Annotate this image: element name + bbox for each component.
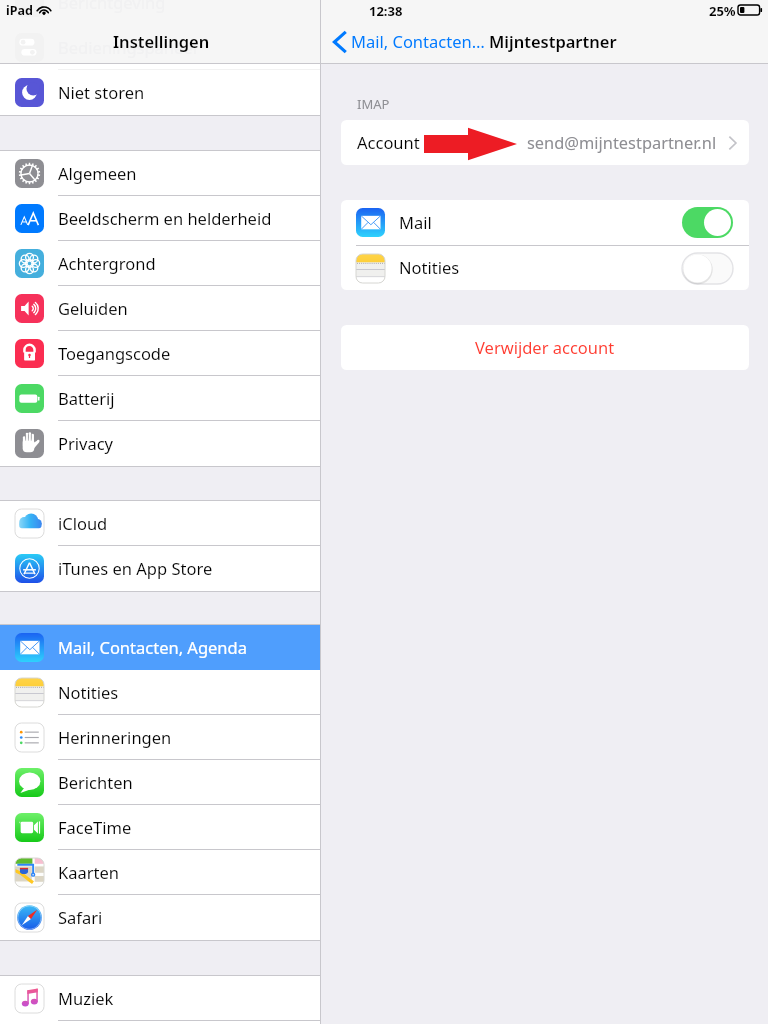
button[interactable]: iCloud	[0, 501, 320, 546]
staticText: FaceTime	[58, 816, 132, 838]
button[interactable]: Notities	[0, 670, 320, 715]
staticText: iCloud	[58, 512, 108, 534]
staticText: Herinneringen	[58, 726, 172, 748]
staticText: Verwijder account	[475, 336, 615, 358]
button[interactable]: Safari	[0, 895, 320, 940]
button[interactable]: Achtergrond	[0, 241, 320, 286]
button[interactable]: Muziek	[0, 976, 320, 1021]
staticText: Notities	[399, 256, 460, 278]
staticText: Mail, Contacten, Agenda	[58, 636, 247, 658]
staticText: Beeldscherm en helderheid	[58, 207, 272, 229]
button[interactable]: Niet storen	[0, 70, 320, 115]
staticText: IMAP	[357, 95, 390, 113]
staticText: Berichten	[58, 771, 133, 793]
button[interactable]: Geluiden	[0, 286, 320, 331]
staticText: iPad	[6, 2, 33, 19]
staticText: Toegangscode	[58, 342, 171, 364]
staticText: Mijntestpartner	[489, 30, 617, 52]
button[interactable]: Back	[321, 30, 485, 52]
button[interactable]: Herinneringen	[0, 715, 320, 760]
button[interactable]: iTunes en App Store	[0, 546, 320, 591]
button[interactable]: Mail, Contacten, Agenda	[0, 625, 320, 670]
button[interactable]: Verwijder account	[341, 325, 749, 370]
button[interactable]: Beeldscherm en helderheid	[0, 196, 320, 241]
staticText: Notities	[58, 681, 119, 703]
staticText: Achtergrond	[58, 252, 156, 274]
staticText: Muziek	[58, 987, 114, 1009]
button[interactable]: Batterij	[0, 376, 320, 421]
staticText: Account	[357, 131, 420, 153]
staticText: Mail, Contacten…	[351, 30, 485, 52]
staticText: 12:38	[369, 2, 403, 20]
button[interactable]: FaceTime	[0, 805, 320, 850]
staticText: Safari	[58, 906, 103, 928]
button[interactable]: Mail	[356, 200, 733, 245]
staticText: Mail	[399, 211, 432, 233]
staticText: 25%	[709, 2, 736, 20]
staticText: Instellingen	[113, 30, 210, 52]
staticText: Niet storen	[58, 81, 145, 103]
staticText: Kaarten	[58, 861, 120, 883]
staticText: Algemeen	[58, 162, 137, 184]
staticText: send@mijntestpartner.nl	[527, 131, 717, 153]
button[interactable]: Notities	[356, 246, 733, 290]
button[interactable]: Algemeen	[0, 151, 320, 196]
staticText: Geluiden	[58, 297, 128, 319]
staticText: Bedieningspaneel	[58, 36, 197, 58]
button[interactable]: Kaarten	[0, 850, 320, 895]
button[interactable]: Toegangscode	[0, 331, 320, 376]
staticText: iTunes en App Store	[58, 557, 213, 579]
button[interactable]: Privacy	[0, 421, 320, 466]
staticText: Batterij	[58, 387, 115, 409]
button[interactable]: Account	[341, 120, 749, 165]
button[interactable]: Berichten	[0, 760, 320, 805]
staticText: Privacy	[58, 432, 114, 454]
